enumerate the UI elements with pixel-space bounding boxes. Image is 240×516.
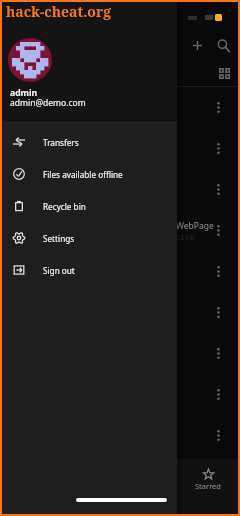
button[interactable]: Transfers [2,126,238,158]
other: More options [207,424,229,446]
staticText: 12 KB [176,233,195,243]
other: More options [207,219,229,241]
button[interactable]: Search [209,31,237,59]
button[interactable]: Recycle bin [2,190,238,222]
staticText: Starred [195,481,221,491]
other: More options [207,383,229,405]
other: More options [207,260,229,282]
button[interactable]: Sign out [2,254,238,286]
button[interactable]: Add [183,31,211,59]
button[interactable]: More options [2,373,238,414]
staticText: Files available offline [43,169,123,180]
button[interactable]: More options [2,291,238,332]
button[interactable]: Settings [2,222,238,254]
button[interactable]: Starred [181,469,235,491]
button[interactable]: WebPage [2,209,238,250]
staticText: admin@demo.com [10,97,86,109]
staticText: hack-cheat.org [6,2,112,21]
other: More options [207,96,229,118]
button[interactable]: More options [2,168,238,209]
other: More options [207,301,229,323]
button[interactable]: More options [2,250,238,291]
other: More options [207,137,229,159]
other: More options [207,178,229,200]
button[interactable]: More options [2,332,238,373]
staticText: Transfers [43,137,79,148]
button[interactable]: More options [2,414,238,455]
staticText: WebPage [176,220,214,232]
staticText: admin [10,87,38,99]
staticText: Settings [43,233,75,244]
button[interactable]: More options [2,127,238,168]
button[interactable]: Grid view [212,61,236,85]
staticText: Sign out [43,265,75,276]
other: More options [207,342,229,364]
button[interactable]: Files available offline [2,158,238,190]
staticText: Recycle bin [43,201,86,212]
button[interactable]: More options [2,86,238,127]
